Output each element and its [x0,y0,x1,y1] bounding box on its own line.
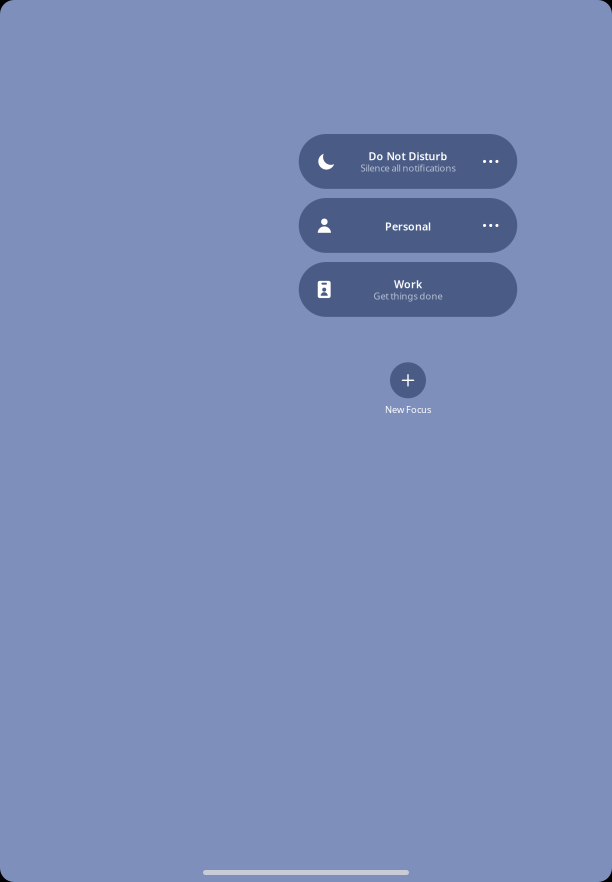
button[interactable]: More options for Personal [474,198,508,253]
staticText: Work [394,277,422,291]
staticText: Do Not Disturb [368,149,447,163]
staticText: Silence all notifications [360,162,455,174]
staticText: New Focus [385,403,431,416]
button[interactable]: Work [299,262,517,317]
button[interactable]: New Focus [385,362,431,416]
staticText: Personal [385,219,431,234]
button[interactable]: More options for Do Not Disturb [474,134,508,189]
staticText: Get things done [373,290,442,302]
button[interactable]: Do Not Disturb [299,134,517,189]
button[interactable]: Personal [299,198,517,253]
